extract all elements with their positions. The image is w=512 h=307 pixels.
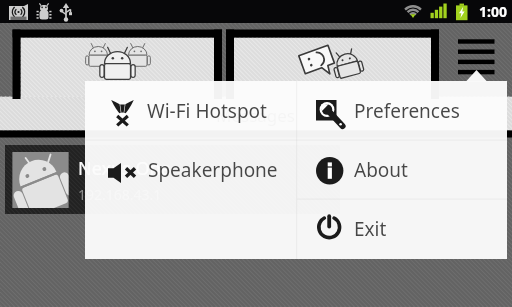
staticText: 192.168.43.1 xyxy=(78,185,162,204)
staticText: About xyxy=(354,157,408,183)
button[interactable]: Nexus One xyxy=(5,145,340,214)
staticText: Speakerphone xyxy=(148,157,278,183)
button[interactable]: Group chat xyxy=(12,29,222,99)
button[interactable]: Wi-Fi Hotspot xyxy=(85,81,296,140)
button[interactable]: About xyxy=(297,140,507,199)
staticText: 1:00 xyxy=(479,2,507,21)
button[interactable]: New conversation xyxy=(226,29,439,99)
staticText: Wi-Fi Hotspot xyxy=(147,98,267,124)
staticText: Exit xyxy=(354,216,387,242)
button[interactable]: Exit xyxy=(297,199,507,258)
button[interactable]: Preferences xyxy=(297,81,507,140)
staticText: Messages xyxy=(216,104,296,127)
button[interactable]: More options xyxy=(450,32,502,82)
button[interactable]: Speakerphone xyxy=(85,140,296,199)
staticText: Nexus One xyxy=(78,156,171,181)
staticText: Preferences xyxy=(354,98,460,124)
